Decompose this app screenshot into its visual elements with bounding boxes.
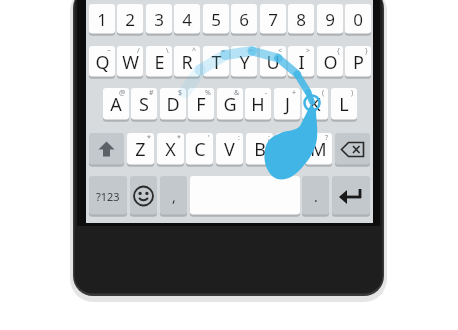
staticText: < xyxy=(278,46,283,56)
staticText: Z xyxy=(135,137,146,162)
staticText: E xyxy=(154,50,165,75)
staticText: 3 xyxy=(154,8,164,31)
button[interactable]: Y xyxy=(231,46,257,78)
staticText: 4 xyxy=(182,8,192,31)
staticText: > xyxy=(306,46,311,56)
staticText: I xyxy=(298,50,305,75)
staticText: U xyxy=(266,50,280,75)
button[interactable]: U xyxy=(260,46,286,78)
staticText: L xyxy=(339,92,349,117)
button[interactable]: 6 xyxy=(231,4,257,35)
staticText: \ xyxy=(166,46,169,56)
button[interactable]: S xyxy=(131,88,157,121)
staticText: D xyxy=(166,92,180,117)
button[interactable]: I xyxy=(288,46,314,78)
button[interactable]: ?123 xyxy=(89,176,127,216)
staticText: A xyxy=(110,92,122,117)
button[interactable]: Z xyxy=(127,133,154,166)
staticText: Y xyxy=(239,50,250,75)
button[interactable]: K xyxy=(302,88,328,121)
button[interactable]: J xyxy=(274,88,300,121)
button[interactable]: V xyxy=(216,133,243,166)
button[interactable]: , xyxy=(160,176,187,216)
staticText: P xyxy=(353,50,364,75)
button[interactable]: 8 xyxy=(288,4,314,35)
button[interactable]: B xyxy=(246,133,273,166)
staticText: + xyxy=(292,88,297,98)
button[interactable]: G xyxy=(217,88,243,121)
button[interactable]: Q xyxy=(89,46,115,78)
staticText: R xyxy=(181,50,193,75)
staticText: V xyxy=(224,137,235,162)
button[interactable]: 7 xyxy=(260,4,286,35)
button[interactable]: C xyxy=(186,133,213,166)
button[interactable]: P xyxy=(345,46,371,78)
staticText: # xyxy=(149,88,154,98)
button[interactable]: F xyxy=(188,88,214,121)
staticText: H xyxy=(251,92,265,117)
button[interactable]: 1 xyxy=(89,4,115,35)
staticText: 0 xyxy=(353,8,363,31)
staticText: 2 xyxy=(125,8,135,31)
staticText: { xyxy=(337,46,340,56)
button[interactable]: Enter xyxy=(332,176,370,216)
staticText: 5 xyxy=(211,8,221,31)
staticText: } xyxy=(365,46,368,56)
staticText: G xyxy=(223,92,237,117)
button[interactable]: 0 xyxy=(345,4,371,35)
staticText: ' xyxy=(208,133,210,143)
button[interactable]: Emoji xyxy=(130,176,157,216)
button[interactable]: D xyxy=(160,88,186,121)
button[interactable]: A xyxy=(103,88,129,121)
staticText: : xyxy=(238,133,240,143)
staticText: - xyxy=(265,88,268,98)
button[interactable]: R xyxy=(174,46,200,78)
staticText: ? xyxy=(325,133,329,143)
button[interactable]: O xyxy=(317,46,343,78)
staticText: B xyxy=(254,137,266,162)
button[interactable]: 5 xyxy=(203,4,229,35)
staticText: / xyxy=(137,46,140,56)
staticText: C xyxy=(194,137,206,162)
staticText: @ xyxy=(119,88,126,98)
staticText: 7 xyxy=(268,8,278,31)
button[interactable]: W xyxy=(117,46,143,78)
staticText: * xyxy=(147,133,151,143)
staticText: ) xyxy=(351,88,354,98)
staticText: & xyxy=(234,88,240,98)
staticText: ; xyxy=(268,133,270,143)
button[interactable]: 9 xyxy=(317,4,343,35)
button[interactable]: . xyxy=(302,176,329,216)
staticText: % xyxy=(205,88,211,98)
staticText: Q xyxy=(95,50,110,75)
staticText: ^ xyxy=(192,46,197,56)
staticText: ( xyxy=(322,88,325,98)
button[interactable]: Backspace xyxy=(335,133,370,166)
staticText: K xyxy=(309,92,321,117)
button[interactable]: 2 xyxy=(117,4,143,35)
button[interactable]: N xyxy=(276,133,303,166)
button[interactable]: 3 xyxy=(146,4,172,35)
staticText: ~ xyxy=(249,46,254,56)
staticText: . xyxy=(314,187,318,206)
button[interactable]: M xyxy=(305,133,332,166)
staticText: 8 xyxy=(296,8,306,31)
staticText: T xyxy=(211,50,222,75)
button[interactable]: Space xyxy=(190,176,300,216)
button[interactable]: 4 xyxy=(174,4,200,35)
staticText: , xyxy=(172,187,176,206)
button[interactable]: L xyxy=(331,88,357,121)
staticText: M xyxy=(310,137,327,162)
button[interactable]: H xyxy=(245,88,271,121)
staticText: F xyxy=(196,92,206,117)
button[interactable]: Shift xyxy=(89,133,124,166)
staticText: 6 xyxy=(239,8,249,31)
staticText: $ xyxy=(178,88,183,98)
staticText: 9 xyxy=(325,8,335,31)
staticText: O xyxy=(323,50,338,75)
button[interactable]: X xyxy=(157,133,184,166)
button[interactable]: E xyxy=(146,46,172,78)
button[interactable]: T xyxy=(203,46,229,78)
